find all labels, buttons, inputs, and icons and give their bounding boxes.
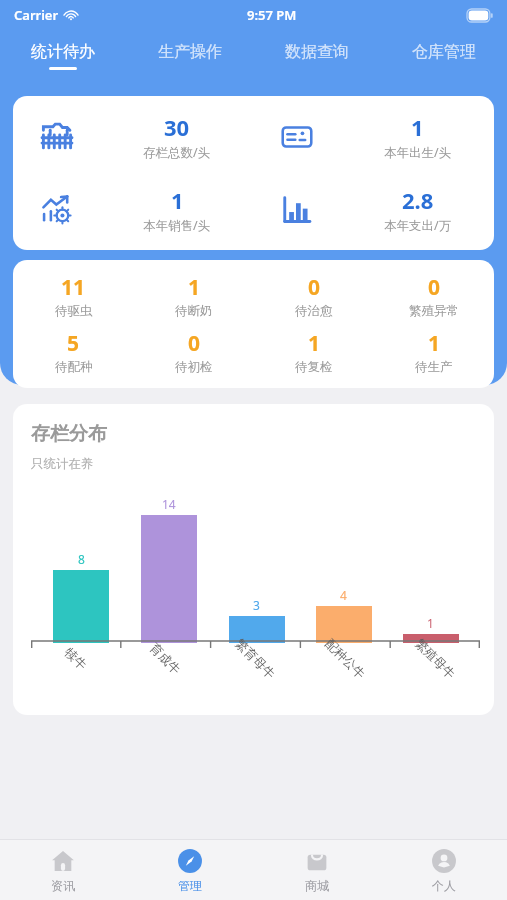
staticText: 仓库管理 — [412, 42, 476, 62]
staticText: 商城 — [305, 878, 329, 893]
button[interactable]: 商城 — [253, 840, 380, 900]
staticText: 个人 — [432, 878, 456, 893]
staticText: 0 — [188, 329, 201, 358]
staticText: 2.8 — [402, 185, 434, 215]
staticText: 1 — [308, 329, 321, 358]
button[interactable]: 1 — [134, 273, 254, 319]
staticText: 1 — [428, 329, 441, 358]
staticText: 待初检 — [175, 359, 213, 375]
button[interactable]: 5 — [13, 329, 134, 375]
staticText: 待断奶 — [175, 303, 213, 319]
button[interactable]: 0 — [134, 329, 254, 375]
staticText: 只统计在养 — [31, 456, 94, 472]
button[interactable]: 11 — [13, 273, 134, 319]
staticText: 待配种 — [55, 359, 93, 375]
staticText: 数据查询 — [285, 42, 349, 62]
button[interactable]: 仓库管理 — [380, 30, 507, 82]
button[interactable]: 1 — [13, 185, 253, 234]
button[interactable]: 资讯 — [0, 840, 126, 900]
button[interactable]: 数据查询 — [253, 30, 380, 82]
staticText: 0 — [428, 273, 441, 302]
button[interactable]: 0 — [254, 273, 374, 319]
staticText: 1 — [411, 112, 424, 142]
button[interactable]: 1 — [253, 112, 494, 161]
staticText: 4 — [340, 587, 347, 603]
staticText: 生产操作 — [158, 42, 222, 62]
staticText: 0 — [308, 273, 321, 302]
staticText: 本年支出/万 — [384, 217, 452, 234]
staticText: 犊牛 — [61, 644, 90, 673]
staticText: 1 — [171, 185, 184, 215]
staticText: 育成牛 — [146, 640, 184, 678]
staticText: 待生产 — [415, 359, 453, 375]
staticText: 繁殖母牛 — [412, 636, 458, 682]
button[interactable]: 个人 — [380, 840, 507, 900]
staticText: 30 — [164, 112, 190, 142]
staticText: 本年销售/头 — [143, 217, 211, 234]
button[interactable]: 管理 — [126, 840, 253, 900]
staticText: 资讯 — [51, 878, 75, 893]
staticText: 统计待办 — [31, 42, 95, 62]
button[interactable]: 1 — [374, 329, 494, 375]
button[interactable]: 1 — [254, 329, 374, 375]
staticText: 14 — [162, 496, 176, 512]
button[interactable]: 2.8 — [253, 185, 494, 234]
staticText: 9:57 PM — [247, 6, 297, 24]
button[interactable]: 0 — [374, 273, 494, 319]
staticText: 繁殖异常 — [409, 303, 459, 319]
staticText: 存栏总数/头 — [143, 144, 211, 161]
staticText: 管理 — [178, 878, 202, 893]
staticText: 配种公牛 — [322, 636, 368, 682]
staticText: 8 — [78, 551, 85, 567]
staticText: 11 — [61, 273, 86, 302]
staticText: 1 — [427, 615, 434, 631]
staticText: 3 — [253, 597, 260, 613]
staticText: 待治愈 — [295, 303, 333, 319]
button[interactable]: 30 — [13, 112, 253, 161]
staticText: 本年出生/头 — [384, 144, 452, 161]
staticText: 存栏分布 — [31, 422, 107, 446]
staticText: 待复检 — [295, 359, 333, 375]
staticText: 5 — [67, 329, 80, 358]
button[interactable]: 生产操作 — [126, 30, 253, 82]
staticText: 1 — [188, 273, 201, 302]
staticText: Carrier — [14, 6, 59, 24]
button[interactable]: 统计待办 — [0, 30, 126, 82]
staticText: 待驱虫 — [55, 303, 93, 319]
staticText: 繁育母牛 — [232, 636, 278, 682]
